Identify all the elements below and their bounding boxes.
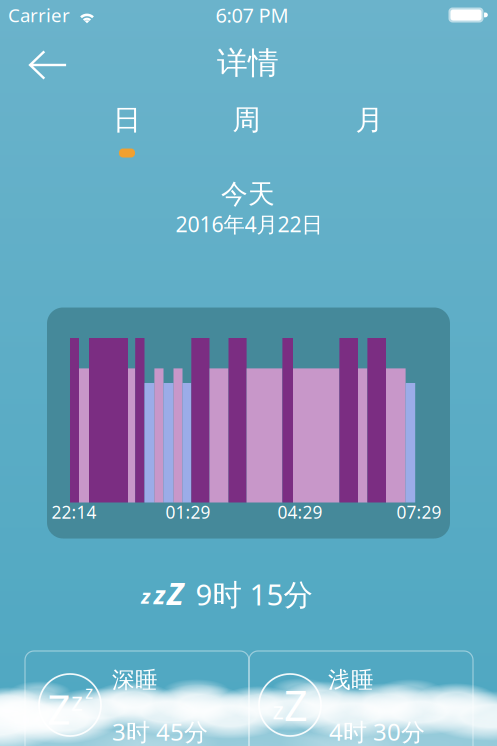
staticText: 详情: [217, 44, 279, 82]
staticText: 9时 15分: [195, 574, 312, 613]
staticText: z: [71, 684, 83, 718]
staticText: z: [141, 583, 150, 609]
staticText: z: [85, 680, 93, 703]
staticText: 2016年4月22日: [175, 210, 322, 238]
staticText: z: [153, 578, 165, 611]
staticText: 22:14: [51, 500, 96, 523]
staticText: Z: [284, 678, 308, 732]
staticText: 今天: [221, 178, 275, 210]
staticText: 月: [355, 103, 383, 137]
staticText: 6:07 PM: [215, 2, 288, 28]
staticText: 4时 30分: [329, 716, 425, 746]
staticText: Carrier: [8, 3, 70, 27]
staticText: 07:29: [396, 500, 441, 523]
button[interactable]: 月: [331, 96, 407, 162]
staticText: 深睡: [112, 666, 158, 694]
button[interactable]: Back: [14, 36, 81, 94]
staticText: 3时 45分: [112, 716, 208, 746]
staticText: Z: [167, 573, 183, 613]
button[interactable]: z: [249, 650, 473, 746]
button[interactable]: Z: [25, 650, 249, 746]
staticText: 01:29: [165, 500, 210, 523]
staticText: 日: [113, 103, 141, 137]
staticText: 周: [232, 103, 260, 137]
staticText: z: [272, 694, 283, 726]
button[interactable]: 日: [89, 96, 165, 162]
button[interactable]: 周: [208, 96, 284, 162]
staticText: 浅睡: [328, 666, 374, 694]
staticText: Z: [47, 682, 70, 735]
staticText: 04:29: [277, 500, 322, 523]
